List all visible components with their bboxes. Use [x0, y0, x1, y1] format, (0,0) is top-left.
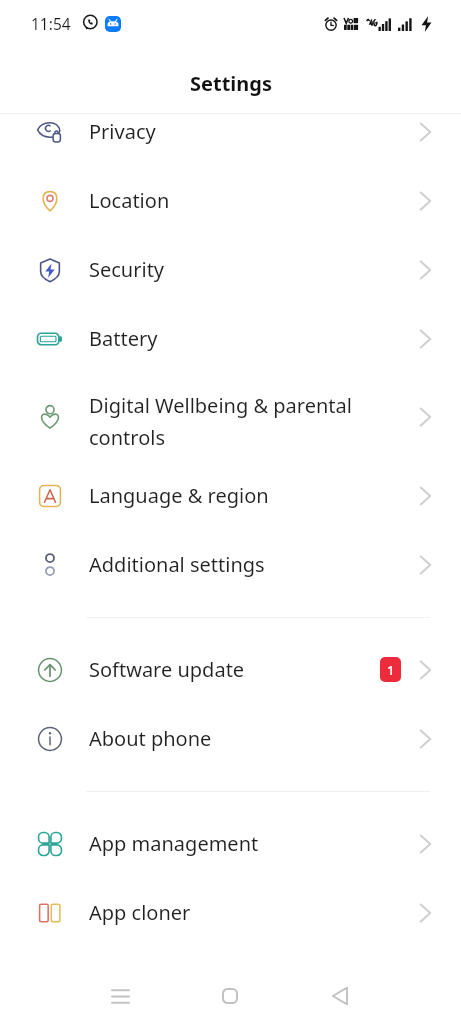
staticText: Language & region	[89, 482, 382, 509]
button[interactable]: Security	[0, 235, 461, 304]
staticText: Settings	[190, 70, 272, 97]
staticText: About phone	[89, 725, 382, 752]
staticText: Security	[89, 256, 382, 283]
staticText: 11:54	[31, 13, 71, 34]
button[interactable]: Home	[206, 972, 254, 1020]
button[interactable]: Back	[316, 972, 364, 1020]
button[interactable]: Location	[0, 166, 461, 235]
button[interactable]: Additional settings	[0, 530, 461, 599]
button[interactable]: About phone	[0, 704, 461, 773]
staticText: Battery	[89, 325, 382, 352]
button[interactable]: Privacy	[0, 114, 461, 166]
staticText: App management	[89, 830, 382, 857]
staticText: Location	[89, 187, 382, 214]
staticText: Additional settings	[89, 551, 382, 578]
staticText: Software update	[89, 656, 342, 683]
button[interactable]: Software update	[0, 635, 461, 704]
button[interactable]: Recent apps	[96, 972, 144, 1020]
button[interactable]: Battery	[0, 304, 461, 373]
button[interactable]: Digital Wellbeing & parental controls	[0, 373, 461, 461]
button[interactable]: App management	[0, 809, 461, 878]
staticText: Digital Wellbeing & parental controls	[89, 392, 382, 451]
staticText: App cloner	[89, 899, 382, 926]
button[interactable]: Language & region	[0, 461, 461, 530]
staticText: Privacy	[89, 118, 382, 145]
button[interactable]: App cloner	[0, 878, 461, 947]
staticText: 1	[387, 661, 395, 679]
